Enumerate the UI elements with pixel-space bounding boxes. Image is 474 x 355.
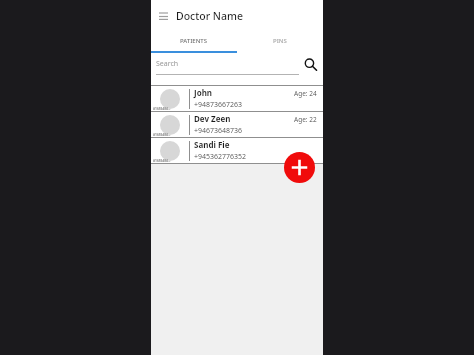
staticText: John — [194, 87, 213, 98]
staticText: PINS — [273, 37, 287, 45]
button[interactable]: #1655484... — [151, 111, 323, 137]
staticText: #1655484... — [153, 107, 171, 111]
staticText: #1655484... — [153, 133, 171, 137]
staticText: +94873667263 — [194, 100, 243, 110]
staticText: +94673648736 — [194, 126, 243, 136]
button[interactable]: #1655484... — [151, 137, 323, 163]
staticText: Doctor Name — [176, 9, 243, 23]
button[interactable]: Open navigation menu — [155, 8, 171, 24]
staticText: Age: 22 — [294, 115, 317, 124]
staticText: Age: 24 — [294, 89, 317, 98]
button[interactable]: #1655484... — [151, 85, 323, 111]
button[interactable]: PATIENTS — [151, 31, 237, 51]
staticText: #1655484... — [153, 159, 171, 163]
staticText: Dev Zeen — [194, 113, 231, 124]
staticText: Search — [156, 59, 179, 69]
button[interactable]: Search — [151, 53, 323, 74]
staticText: Sandi Fie — [194, 139, 230, 150]
button[interactable]: Add patient — [284, 152, 315, 183]
button[interactable]: Search — [300, 54, 320, 74]
button[interactable]: PINS — [237, 31, 323, 51]
staticText: +945362776352 — [194, 152, 247, 162]
staticText: PATIENTS — [180, 37, 208, 45]
